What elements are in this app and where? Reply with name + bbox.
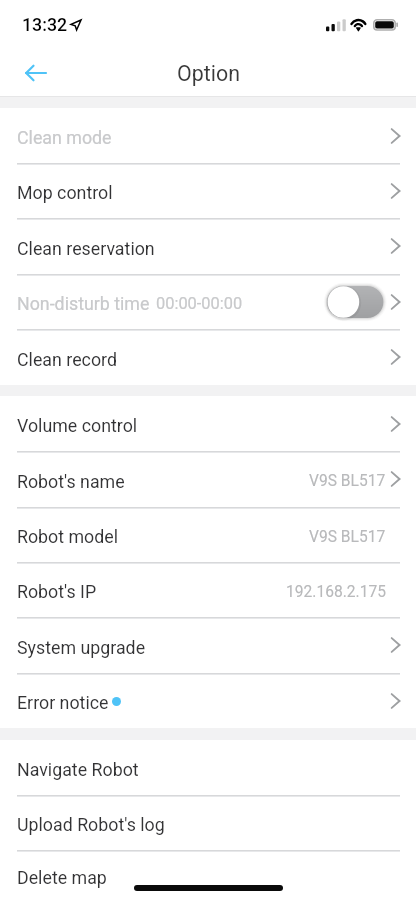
button[interactable]: Clean reservation	[0, 218, 416, 274]
staticText: Mop control	[17, 182, 113, 203]
button[interactable]: Clean mode	[0, 108, 416, 163]
button[interactable]: Delete map	[0, 850, 416, 900]
staticText: Option	[177, 61, 240, 86]
button[interactable]: System upgrade	[0, 617, 416, 673]
button[interactable]: Volume control	[0, 396, 416, 451]
button[interactable]: Robot's name	[0, 451, 416, 507]
button[interactable]: Robot's IP	[0, 562, 416, 617]
staticText: Clean record	[17, 349, 117, 370]
button[interactable]: Back	[14, 46, 58, 96]
button[interactable]: Navigate Robot	[0, 740, 416, 795]
staticText: Robot model	[17, 526, 119, 547]
staticText: Error notice	[17, 692, 109, 713]
staticText: Non-disturb time	[17, 293, 150, 314]
staticText: V9S BL517	[309, 528, 386, 546]
button[interactable]: Mop control	[0, 163, 416, 218]
staticText: Delete map	[17, 867, 107, 888]
staticText: 00:00-00:00	[156, 294, 243, 313]
staticText: 13:32	[22, 14, 68, 35]
staticText: 192.168.2.175	[286, 583, 386, 601]
staticText: Robot's IP	[17, 581, 97, 602]
button[interactable]: Clean record	[0, 329, 416, 385]
staticText: V9S BL517	[309, 472, 386, 490]
button[interactable]: Robot model	[0, 507, 416, 562]
button[interactable]: Error notice	[0, 673, 416, 728]
button[interactable]: Upload Robot's log	[0, 795, 416, 850]
staticText: Clean reservation	[17, 238, 155, 259]
staticText: System upgrade	[17, 637, 146, 658]
staticText: Navigate Robot	[17, 759, 139, 780]
staticText: Clean mode	[17, 127, 112, 148]
staticText: Volume control	[17, 415, 138, 436]
staticText: Robot's name	[17, 471, 125, 492]
button[interactable]: Non-disturb time	[0, 274, 416, 329]
button[interactable]: Non-disturb time toggle	[324, 283, 386, 321]
staticText: Upload Robot's log	[17, 814, 165, 835]
